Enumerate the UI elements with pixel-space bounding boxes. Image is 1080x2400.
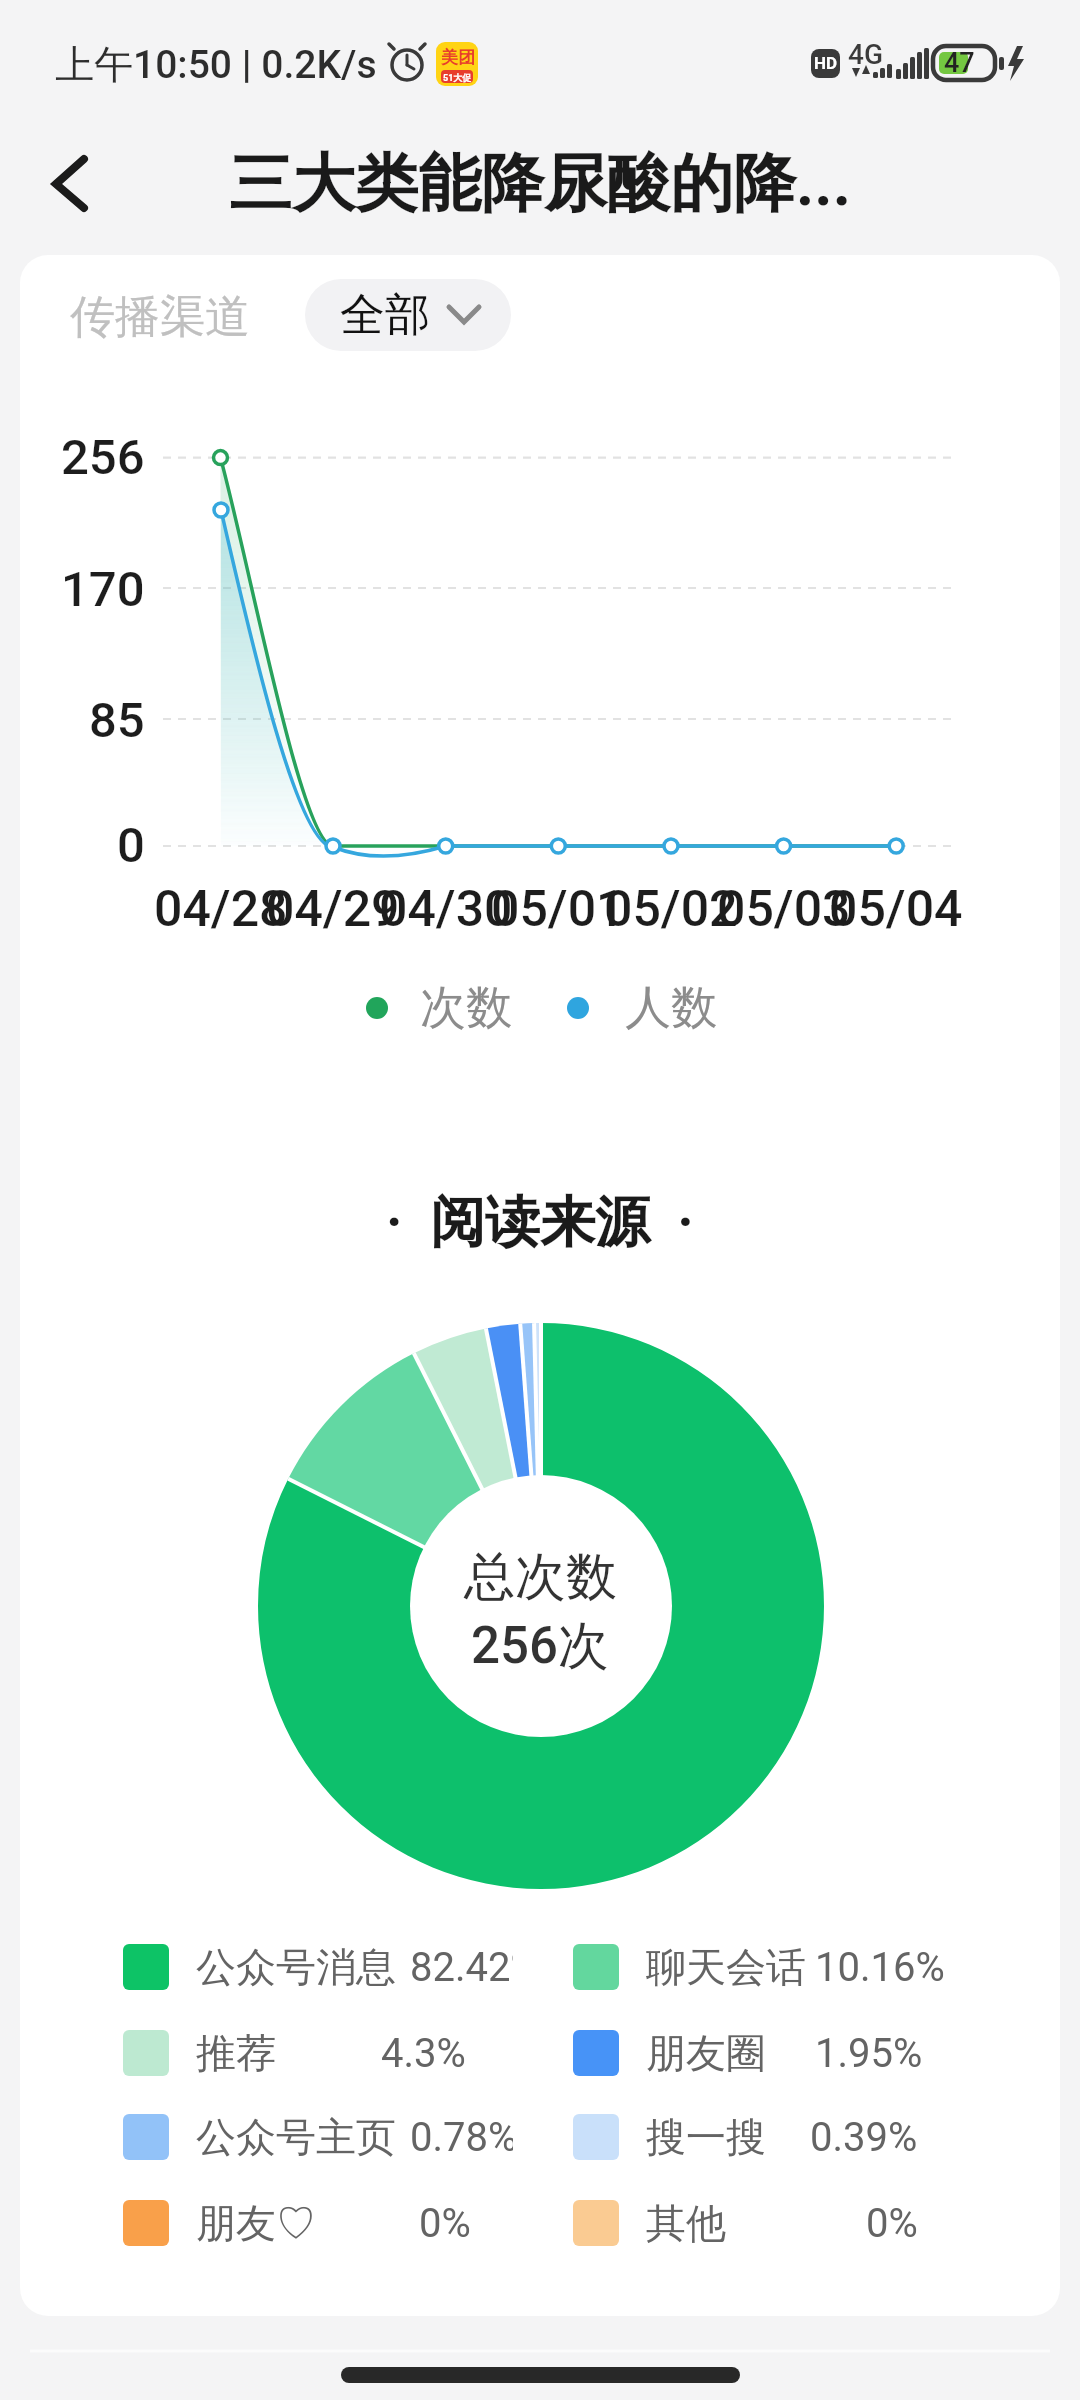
staticText: 0.78% [410,2114,513,2161]
staticText: 推荐 [196,2028,276,2078]
staticText: 82.42% [410,1944,513,1991]
staticText: 170 [61,561,145,618]
staticText: 05/01 [491,880,625,939]
staticText: 朋友♡ [196,2198,316,2248]
staticText: 美团 [441,47,475,68]
staticText: 搜一搜 [646,2112,766,2162]
staticText: 0.39% [810,2114,918,2161]
staticText: 公众号主页 [196,2112,396,2162]
staticText: 全部 [340,287,430,344]
staticText: 上午10:50 | 0.2K/s [55,40,377,89]
staticText: 人数 [625,979,717,1037]
staticText: 05/04 [829,880,963,939]
staticText: 4G [848,38,883,71]
staticText: 05/03 [717,880,851,939]
button[interactable] [30,140,120,230]
staticText: HD [814,53,838,73]
staticText: 04/28 [154,880,288,939]
staticText: 10.16% [815,1944,945,1991]
staticText: 47 [944,47,975,79]
staticText: 256次 [471,1614,609,1678]
staticText: 三大类能降尿酸的降... [229,144,852,223]
button[interactable] [305,279,511,351]
staticText: 总次数 [464,1545,617,1609]
staticText: 公众号消息 [196,1942,396,1992]
staticText: 0 [117,817,145,874]
staticText: 聊天会话 [646,1942,806,1992]
staticText: 传播渠道 [70,289,250,346]
staticText: 1.95% [815,2030,923,2077]
staticText: 85 [89,692,145,749]
staticText: 256 [61,429,145,486]
staticText: 04/29 [266,880,400,939]
staticText: · 阅读来源 · [386,1188,694,1257]
staticText: 次数 [420,979,512,1037]
staticText: 51大促 [443,72,472,83]
staticText: 其他 [646,2198,726,2248]
staticText: 05/02 [604,880,738,939]
staticText: 04/30 [379,880,513,939]
staticText: 0% [866,2200,918,2247]
staticText: 4.3% [381,2030,466,2077]
staticText: 0% [419,2200,471,2247]
staticText: 朋友圈 [646,2028,766,2078]
